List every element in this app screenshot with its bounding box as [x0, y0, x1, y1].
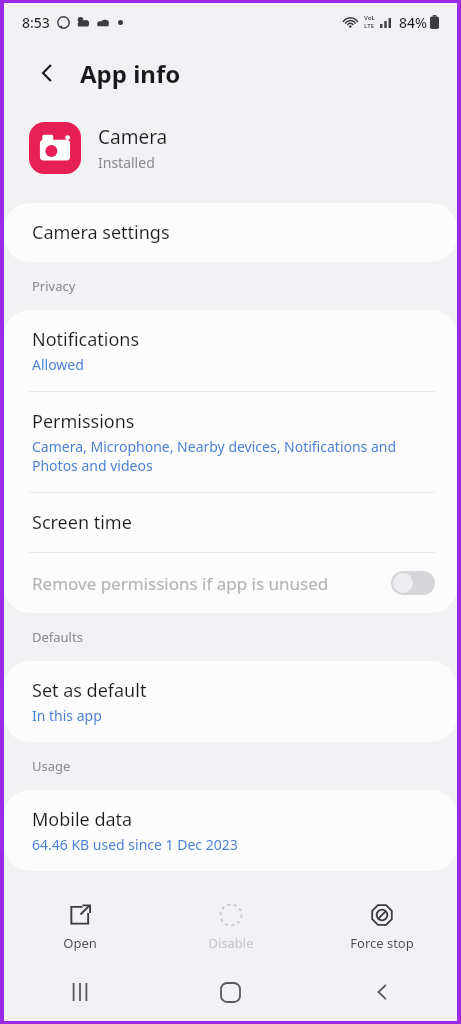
- staticText: Camera settings: [32, 220, 170, 245]
- staticText: 8:53: [22, 13, 50, 32]
- staticText: Allowed: [32, 355, 84, 374]
- button[interactable]: Force stop: [306, 891, 457, 963]
- staticText: Camera, Microphone, Nearby devices, Noti…: [32, 437, 397, 475]
- staticText: Usage: [32, 757, 71, 775]
- button[interactable]: Screen time: [4, 493, 457, 552]
- button[interactable]: Camera settings: [4, 203, 457, 262]
- button[interactable]: Recents: [4, 963, 155, 1021]
- staticText: Open: [63, 934, 97, 952]
- button[interactable]: Set as default: [4, 661, 457, 742]
- button[interactable]: Disable: [155, 891, 306, 963]
- staticText: App info: [80, 57, 181, 90]
- staticText: Installed: [98, 153, 155, 172]
- button[interactable]: Home: [155, 963, 306, 1021]
- staticText: VoL: [364, 14, 375, 22]
- staticText: 84%: [399, 13, 427, 32]
- staticText: LTE: [364, 22, 375, 30]
- staticText: Mobile data: [32, 807, 133, 832]
- staticText: Permissions: [32, 409, 135, 434]
- staticText: Defaults: [32, 628, 83, 646]
- staticText: Remove permissions if app is unused: [32, 572, 391, 595]
- staticText: Force stop: [350, 934, 414, 952]
- button[interactable]: Notifications: [4, 310, 457, 391]
- button[interactable]: Permissions: [4, 392, 457, 492]
- staticText: Set as default: [32, 678, 147, 703]
- button[interactable]: Mobile data: [4, 790, 457, 871]
- staticText: Disable: [208, 934, 254, 952]
- staticText: Screen time: [32, 510, 132, 535]
- button[interactable]: Open: [4, 891, 155, 963]
- staticText: 64.46 KB used since 1 Dec 2023: [32, 835, 238, 854]
- button[interactable]: Remove permissions if app is unused: [4, 553, 457, 613]
- staticText: Privacy: [32, 277, 76, 295]
- staticText: Camera: [98, 124, 168, 150]
- staticText: Notifications: [32, 327, 140, 352]
- button[interactable]: Back: [306, 963, 457, 1021]
- button[interactable]: Back: [24, 50, 70, 96]
- staticText: In this app: [32, 706, 102, 725]
